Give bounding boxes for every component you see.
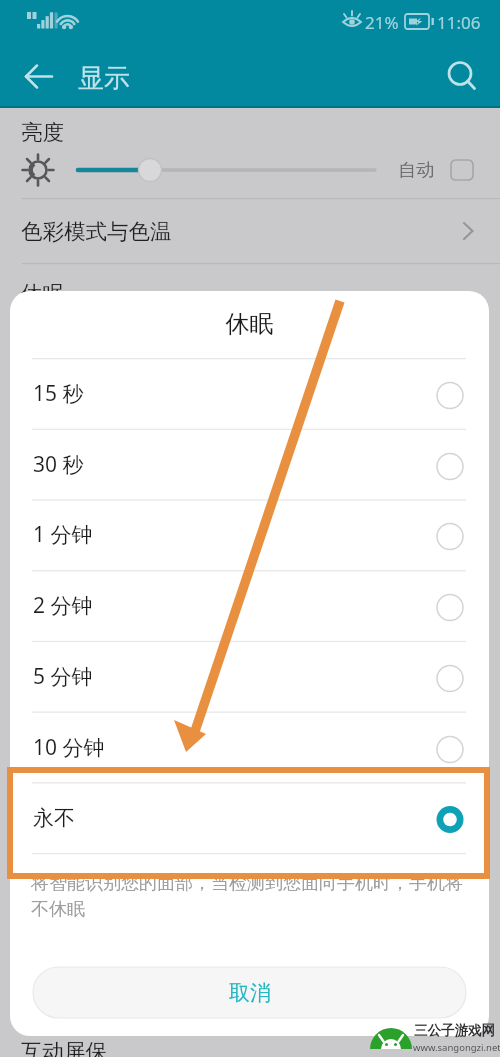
staticText: 2 分钟 [33, 591, 93, 620]
staticText: 21% [365, 11, 399, 34]
staticText: 自动 [398, 159, 434, 182]
staticText: www.sangongzi.net [413, 1041, 500, 1054]
staticText: 永不 [33, 805, 75, 831]
staticText: 5 分钟 [33, 662, 93, 691]
staticText: 10 分钟 [33, 733, 105, 762]
button[interactable]: Back [14, 54, 62, 102]
button[interactable]: 15 秒 [10, 358, 489, 429]
staticText: 三公子游戏网 [414, 1022, 495, 1039]
button[interactable]: 色彩模式与色温 [0, 199, 500, 263]
staticText: 休眠 [21, 280, 64, 307]
button[interactable]: 永不 [10, 782, 489, 853]
button[interactable]: 2 分钟 [10, 570, 489, 641]
staticText: 1 分钟 [33, 520, 93, 549]
staticText: 15 秒 [33, 379, 84, 408]
button[interactable]: 5 分钟 [10, 641, 489, 712]
staticText: 色彩模式与色温 [21, 218, 172, 245]
staticText: 将智能识别您的面部，当检测到您面向手机时，手机将不休眠 [31, 872, 473, 920]
staticText: 取消 [229, 980, 271, 1006]
staticText: 亮度 [21, 119, 64, 146]
staticText: 30 秒 [33, 450, 84, 479]
button[interactable]: Search [436, 52, 484, 100]
staticText: 休眠 [10, 309, 489, 339]
button[interactable]: 30 秒 [10, 429, 489, 500]
button[interactable]: 10 分钟 [10, 712, 489, 783]
button[interactable]: 自动 [390, 150, 476, 190]
staticText: 11:06 [437, 11, 481, 34]
button[interactable]: 1 分钟 [10, 499, 489, 570]
staticText: 互动屏保 [21, 1038, 107, 1057]
staticText: 显示 [78, 62, 130, 95]
button[interactable]: 取消 [33, 967, 466, 1018]
